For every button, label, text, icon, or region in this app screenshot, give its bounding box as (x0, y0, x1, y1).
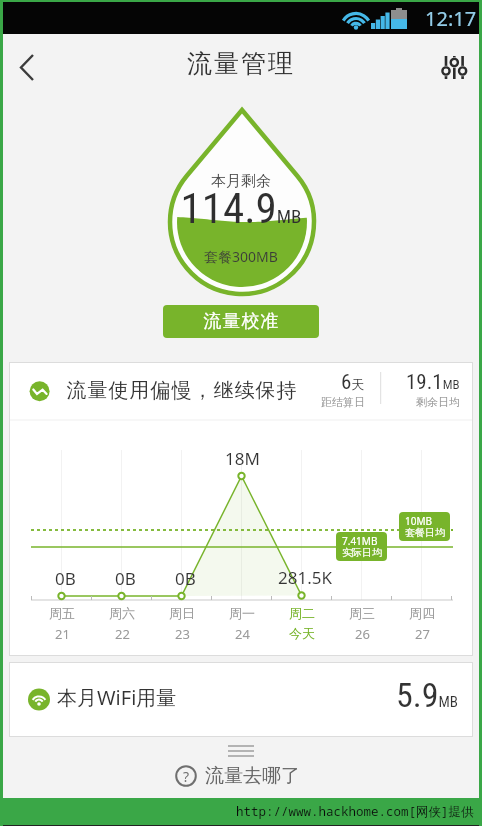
button[interactable]: 本月WiFi用量 (9, 662, 473, 737)
button[interactable]: ? (0, 760, 478, 792)
staticText: 281.5K (278, 566, 332, 589)
staticText: 12:17 (425, 5, 477, 32)
staticText: 21 (55, 625, 70, 643)
button[interactable]: 流量校准 (163, 305, 319, 338)
staticText: 周日 (169, 605, 195, 621)
staticText: 0B (115, 567, 136, 590)
staticText: 7.41MB 实际日均 (342, 534, 382, 559)
staticText: 19.1MB (406, 370, 460, 395)
staticText: 5.9MB (396, 675, 459, 715)
staticText: 26 (355, 625, 370, 643)
staticText: 流量去哪了 (205, 764, 300, 788)
staticText: 24 (235, 625, 250, 643)
staticText: 套餐300MB (0, 247, 482, 266)
staticText: 流量管理 (0, 48, 482, 79)
button[interactable] (6, 44, 54, 92)
staticText: 周三 (349, 605, 375, 621)
staticText: 本月剩余 (0, 172, 482, 191)
staticText: 27 (415, 625, 430, 643)
staticText: 周五 (49, 605, 75, 621)
staticText: 18M (225, 447, 260, 470)
staticText: 6天 (341, 370, 365, 395)
staticText: 周六 (109, 605, 135, 621)
staticText: 今天 (289, 625, 315, 641)
staticText: 流量使用偏慢，继续保持 (66, 378, 297, 403)
staticText: http://www.hackhome.com[网侠]提供 (236, 803, 474, 820)
staticText: 距结算日 (321, 395, 365, 409)
staticText: 0B (55, 567, 76, 590)
staticText: 0B (175, 567, 196, 590)
staticText: 周二 (289, 605, 315, 621)
staticText: 本月WiFi用量 (57, 684, 177, 711)
staticText: 10MB 套餐日均 (405, 514, 445, 539)
staticText: ? (183, 767, 190, 786)
staticText: 22 (115, 625, 130, 643)
staticText: 周四 (409, 605, 435, 621)
staticText: 流量校准 (203, 310, 279, 333)
button[interactable] (430, 44, 476, 90)
staticText: 周一 (229, 605, 255, 621)
staticText: 23 (175, 625, 190, 643)
staticText: 114.9MB (0, 183, 482, 233)
staticText: 剩余日均 (416, 395, 460, 409)
